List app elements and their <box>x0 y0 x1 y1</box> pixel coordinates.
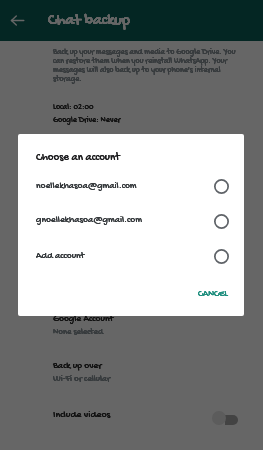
button[interactable] <box>53 359 183 385</box>
button[interactable] <box>18 170 244 204</box>
button[interactable] <box>193 284 237 302</box>
staticText: Choose an account <box>36 152 120 165</box>
staticText: gnoellekhasoa@gmail.com <box>36 215 142 226</box>
staticText: Local: 02:00 <box>53 103 94 112</box>
staticText: None selected <box>53 327 103 337</box>
staticText: Wi-Fi or cellular <box>53 374 111 385</box>
staticText: Chat backup <box>48 12 130 31</box>
staticText: Back up over <box>53 361 102 372</box>
staticText: Google Account <box>53 314 114 325</box>
staticText: Choose an account <box>36 152 120 165</box>
button[interactable] <box>18 205 244 239</box>
staticText: Include videos <box>53 409 111 421</box>
staticText: Include videos <box>53 409 111 421</box>
staticText: Choose an account <box>36 152 120 165</box>
staticText: Back up your messages and media to Googl… <box>53 48 239 84</box>
staticText: noellekhasoa@gmail.com <box>36 181 137 192</box>
staticText: None selected <box>53 327 103 337</box>
staticText: Google Drive: Never <box>53 116 121 125</box>
staticText: Back up your messages and media to Googl… <box>53 48 239 84</box>
staticText: Back up over <box>53 361 102 372</box>
staticText: noellekhasoa@gmail.com <box>36 181 137 192</box>
staticText: gnoellekhasoa@gmail.com <box>36 215 142 226</box>
staticText: Back up over <box>53 361 102 372</box>
staticText: Add account <box>36 251 85 262</box>
staticText: Google Account <box>53 314 114 325</box>
staticText: Include videos <box>53 409 111 421</box>
staticText: Back up your messages and media to Googl… <box>53 48 239 84</box>
staticText: Chat backup <box>48 12 130 31</box>
staticText: Add account <box>36 251 85 262</box>
staticText: Local: 02:00 <box>53 103 94 112</box>
staticText: None selected <box>53 327 103 337</box>
staticText: gnoellekhasoa@gmail.com <box>36 215 142 226</box>
staticText: noellekhasoa@gmail.com <box>36 181 137 192</box>
staticText: CANCEL <box>198 289 228 300</box>
button[interactable] <box>18 240 244 274</box>
staticText: CANCEL <box>198 289 228 300</box>
staticText: Wi-Fi or cellular <box>53 374 111 385</box>
button[interactable] <box>0 404 263 430</box>
staticText: Google Drive: Never <box>53 116 121 125</box>
button[interactable] <box>53 312 183 338</box>
staticText: Google Account <box>53 314 114 325</box>
staticText: CANCEL <box>198 289 228 300</box>
button[interactable]: Back <box>6 9 28 31</box>
staticText: Add account <box>36 251 85 262</box>
staticText: Chat backup <box>48 12 130 31</box>
staticText: Local: 02:00 <box>53 103 94 112</box>
staticText: Wi-Fi or cellular <box>53 374 111 385</box>
staticText: Google Drive: Never <box>53 116 121 125</box>
